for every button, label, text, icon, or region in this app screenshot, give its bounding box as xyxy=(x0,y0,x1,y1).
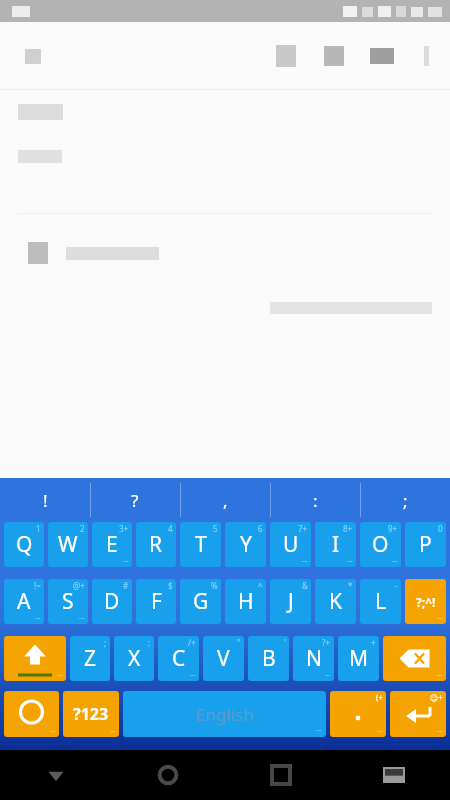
staticText: K xyxy=(329,587,342,616)
button[interactable]: S xyxy=(48,579,88,624)
button[interactable]: Period xyxy=(330,691,386,737)
button[interactable]: Back xyxy=(112,750,224,800)
button[interactable]: ! xyxy=(0,478,90,522)
button[interactable]: Shift xyxy=(4,636,66,681)
button[interactable]: Recent apps xyxy=(337,750,450,800)
button[interactable]: B xyxy=(248,636,289,681)
staticText: S xyxy=(62,587,74,616)
staticText: (+ xyxy=(376,692,383,703)
staticText: ... xyxy=(437,612,443,622)
staticText: ; xyxy=(403,489,408,512)
staticText: 9+ xyxy=(388,523,398,534)
button[interactable]: U xyxy=(270,522,311,567)
staticText: ?+ xyxy=(322,637,331,648)
button[interactable]: Numbers and symbols xyxy=(63,691,119,737)
button[interactable]: English xyxy=(123,691,326,737)
staticText: ☺+ xyxy=(430,692,443,703)
button[interactable]: , xyxy=(180,478,270,522)
button[interactable]: Y xyxy=(225,522,266,567)
staticText: English xyxy=(196,703,254,726)
staticText: ... xyxy=(35,612,41,622)
staticText: ... xyxy=(110,725,116,735)
button[interactable]: A xyxy=(4,579,44,624)
staticText: M xyxy=(349,644,369,673)
staticText: # xyxy=(123,580,129,591)
button[interactable]: D xyxy=(92,579,132,624)
button[interactable]: Attach xyxy=(268,38,304,74)
button[interactable]: Hide keyboard xyxy=(0,750,112,800)
button[interactable]: X xyxy=(114,636,154,681)
staticText: J xyxy=(288,587,294,616)
staticText: ^ xyxy=(258,580,263,591)
button[interactable]: Backspace xyxy=(383,636,446,681)
staticText: V xyxy=(217,644,230,673)
staticText: : xyxy=(313,489,318,512)
staticText: ... xyxy=(377,725,383,735)
button[interactable]: Home xyxy=(224,750,337,800)
staticText: /+ xyxy=(188,637,196,648)
staticText: I xyxy=(332,530,340,559)
button[interactable]: I xyxy=(315,522,356,567)
staticText: ... xyxy=(79,612,85,622)
staticText: ; xyxy=(104,637,107,648)
button[interactable]: Voice input xyxy=(4,691,59,737)
button[interactable]: Back xyxy=(16,39,50,73)
button[interactable]: W xyxy=(48,522,88,567)
staticText: ? xyxy=(131,489,139,512)
button[interactable]: O xyxy=(360,522,401,567)
button[interactable]: V xyxy=(203,636,244,681)
button[interactable]: ? xyxy=(90,478,180,522)
button[interactable]: Enter xyxy=(390,691,446,737)
staticText: ... xyxy=(316,724,322,734)
staticText: 3+ xyxy=(119,523,129,534)
staticText: 2 xyxy=(80,523,85,534)
staticText: W xyxy=(58,530,78,559)
button[interactable]: ; xyxy=(360,478,450,522)
button[interactable]: Z xyxy=(70,636,110,681)
button[interactable]: J xyxy=(270,579,311,624)
staticText: F xyxy=(151,587,162,616)
button[interactable]: K xyxy=(315,579,356,624)
staticText: " xyxy=(237,637,241,648)
button[interactable]: Q xyxy=(4,522,44,567)
button[interactable] xyxy=(28,242,450,264)
staticText: & xyxy=(302,580,308,591)
staticText: ... xyxy=(392,555,398,565)
button[interactable]: H xyxy=(225,579,266,624)
button[interactable]: Save xyxy=(364,38,400,74)
staticText: * xyxy=(348,580,353,591)
button[interactable]: Send xyxy=(316,38,352,74)
button[interactable]: G xyxy=(180,579,221,624)
staticText: ... xyxy=(437,669,443,679)
staticText: ?123 xyxy=(73,703,109,725)
button[interactable]: L xyxy=(360,579,401,624)
staticText: T xyxy=(195,530,207,559)
staticText: 4 xyxy=(168,523,173,534)
button[interactable]: C xyxy=(158,636,199,681)
button[interactable]: : xyxy=(270,478,360,522)
button[interactable]: F xyxy=(136,579,176,624)
button[interactable]: T xyxy=(180,522,221,567)
staticText: ?;^! xyxy=(416,594,436,610)
staticText: , xyxy=(223,489,228,512)
button[interactable]: M xyxy=(338,636,379,681)
staticText: ! xyxy=(43,489,48,512)
staticText: $ xyxy=(168,580,173,591)
staticText: L xyxy=(375,587,387,616)
button[interactable]: More options xyxy=(412,42,440,70)
button[interactable]: R xyxy=(136,522,176,567)
button[interactable]: E xyxy=(92,522,132,567)
staticText: Y xyxy=(240,530,252,559)
staticText: + xyxy=(371,637,376,648)
button[interactable]: P xyxy=(405,522,446,567)
staticText: B xyxy=(262,644,276,673)
staticText: X xyxy=(128,644,141,673)
staticText: 1 xyxy=(36,523,41,534)
button[interactable]: Symbols xyxy=(405,579,446,624)
staticText: C xyxy=(172,644,186,673)
staticText: : xyxy=(148,637,151,648)
staticText: G xyxy=(193,587,209,616)
button[interactable]: N xyxy=(293,636,334,681)
